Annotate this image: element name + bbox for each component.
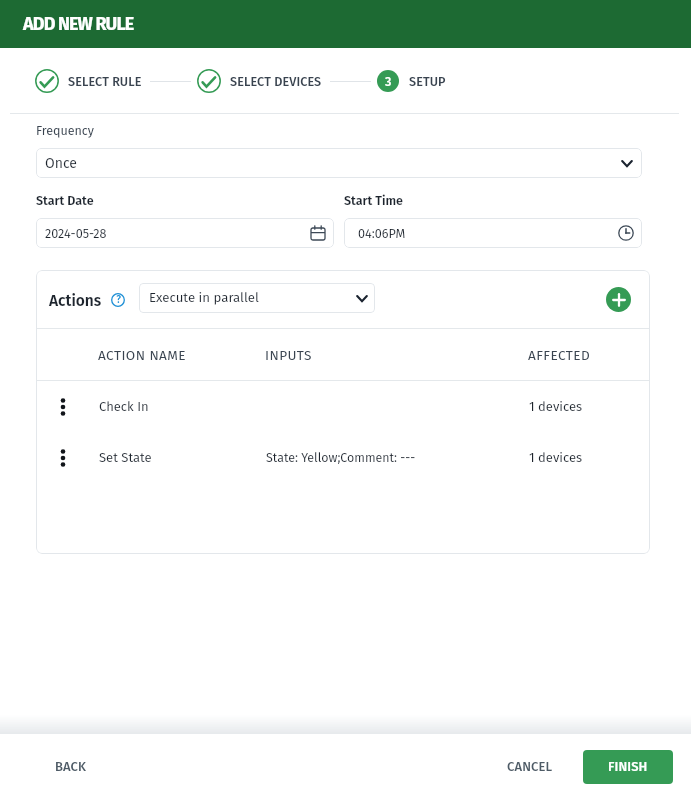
staticText: SELECT RULE: [68, 74, 142, 89]
staticText: ?: [116, 294, 121, 306]
button[interactable]: Execute in parallel: [139, 283, 375, 313]
staticText: SETUP: [409, 74, 446, 89]
staticText: 1 devices: [529, 450, 583, 466]
staticText: SELECT DEVICES: [230, 74, 322, 89]
staticText: Frequency: [36, 123, 94, 138]
button[interactable]: FINISH: [583, 750, 673, 784]
staticText: 3: [385, 74, 392, 89]
staticText: Actions: [49, 292, 102, 311]
button[interactable]: BACK: [49, 751, 93, 783]
staticText: BACK: [55, 759, 87, 775]
button[interactable]: More options: [53, 448, 73, 468]
staticText: Start Date: [36, 193, 94, 208]
staticText: Execute in parallel: [149, 290, 259, 306]
button[interactable]: 2024-05-28: [36, 218, 334, 248]
button[interactable]: Help: [111, 293, 125, 307]
staticText: 04:06PM: [358, 226, 406, 241]
staticText: ACTION NAME: [98, 347, 265, 363]
button[interactable]: 04:06PM: [344, 218, 642, 248]
button[interactable]: Add action: [606, 287, 631, 312]
staticText: AFFECTED: [528, 347, 591, 363]
staticText: FINISH: [608, 759, 648, 775]
button[interactable]: CANCEL: [501, 751, 559, 783]
staticText: INPUTS: [265, 347, 528, 363]
button[interactable]: More options: [36, 432, 650, 483]
staticText: Check In: [99, 399, 266, 415]
staticText: State: Yellow;Comment: ---: [266, 450, 529, 465]
staticText: Start Time: [344, 193, 403, 208]
staticText: 1 devices: [529, 399, 583, 415]
button[interactable]: SELECT RULE: [35, 69, 142, 93]
staticText: CANCEL: [507, 759, 553, 775]
staticText: 2024-05-28: [45, 226, 107, 241]
button[interactable]: Once: [36, 148, 642, 178]
staticText: ADD NEW RULE: [23, 13, 134, 35]
staticText: Once: [45, 155, 77, 172]
button[interactable]: SELECT DEVICES: [197, 69, 322, 93]
button[interactable]: ADD NEW RULE: [0, 0, 691, 48]
button[interactable]: More options: [53, 397, 73, 417]
staticText: Set State: [99, 450, 266, 466]
button[interactable]: More options: [36, 381, 650, 432]
button[interactable]: 3: [377, 70, 446, 92]
